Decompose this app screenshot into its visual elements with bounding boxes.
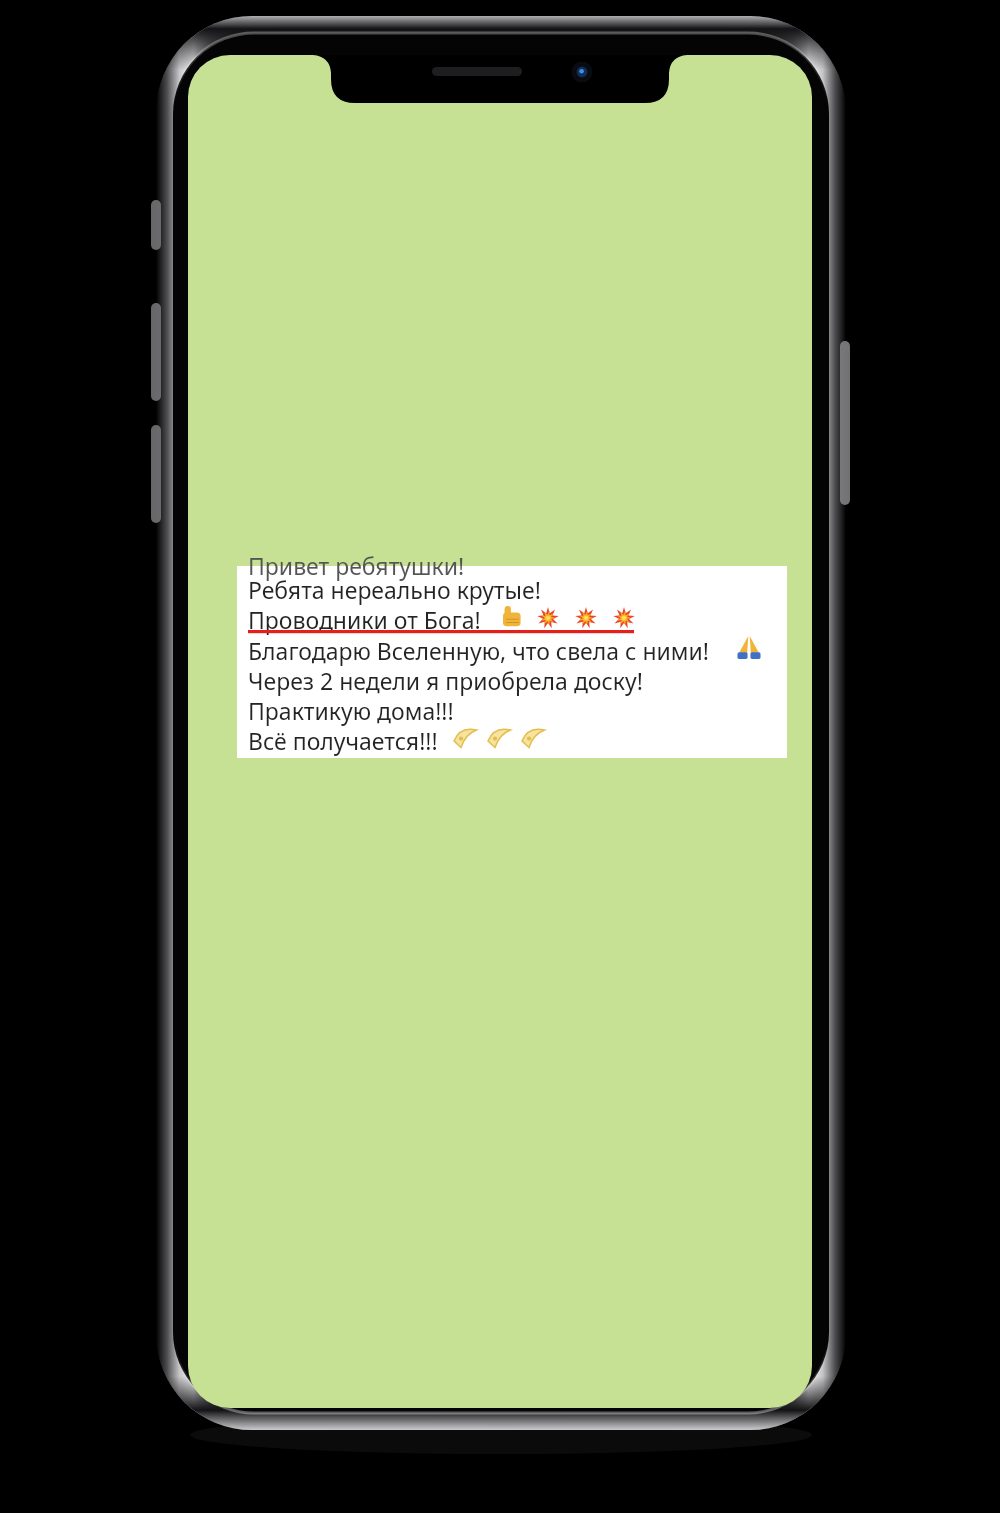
staticText: Всё получается!!! [248, 725, 438, 756]
button[interactable]: Volume down [148, 422, 164, 526]
staticText: Привет ребятушки! [248, 550, 465, 581]
staticText: Благодарю Вселенную, что свела с ними! [248, 635, 709, 666]
button[interactable]: Power [836, 338, 852, 508]
button[interactable]: Привет ребятушки! [237, 566, 787, 758]
staticText: Практикую дома!!! [248, 695, 454, 726]
staticText: Ребята нереально крутые! [248, 574, 541, 605]
button[interactable]: Volume up [148, 300, 164, 404]
staticText: Через 2 недели я приобрела доску! [248, 665, 643, 696]
staticText: Проводники от Бога! [248, 604, 481, 635]
button[interactable]: Silent mode switch [148, 196, 164, 254]
